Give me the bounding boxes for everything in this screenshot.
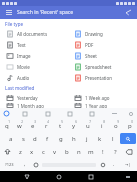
staticText: PDF xyxy=(85,42,94,48)
button[interactable]: 5 xyxy=(53,119,67,132)
button[interactable]: 4 xyxy=(39,119,53,132)
button[interactable]: k xyxy=(93,132,106,145)
button[interactable]: Collapse xyxy=(124,8,133,17)
button[interactable]: Spreadsheet xyxy=(68,61,137,72)
button[interactable]: z xyxy=(15,145,26,158)
button[interactable]: c xyxy=(37,145,49,158)
button[interactable]: a xyxy=(5,132,17,145)
button[interactable]: More xyxy=(103,108,125,119)
staticText: 5 xyxy=(61,120,63,124)
button[interactable]: . xyxy=(108,158,119,171)
button[interactable]: h xyxy=(67,132,80,145)
button[interactable]: Movie xyxy=(0,61,68,72)
button[interactable]: Recents xyxy=(80,171,101,182)
staticText: m xyxy=(88,148,94,156)
button[interactable]: n xyxy=(73,145,85,158)
staticText: Text xyxy=(17,42,26,48)
button[interactable]: Back xyxy=(17,171,37,182)
button[interactable]: s xyxy=(17,132,29,145)
staticText: v xyxy=(53,148,57,156)
button[interactable]: Google xyxy=(0,108,13,119)
button[interactable]: Sheet xyxy=(68,50,137,61)
button[interactable]: ?123 xyxy=(0,158,19,171)
button[interactable]: Drawing xyxy=(68,28,137,39)
button[interactable]: ? xyxy=(109,145,121,158)
button[interactable]: 1 xyxy=(0,119,13,132)
button[interactable]: Emoji xyxy=(30,158,41,171)
button[interactable]: Settings xyxy=(125,108,137,119)
button[interactable]: PDF xyxy=(68,39,137,50)
button[interactable]: 2 xyxy=(13,119,26,132)
staticText: Image xyxy=(17,53,31,59)
button[interactable]: 1 Month ago xyxy=(0,103,68,108)
button[interactable]: →| xyxy=(119,158,137,171)
button[interactable]: 8 xyxy=(95,119,109,132)
staticText: 6 xyxy=(75,120,77,124)
staticText: Yesterday xyxy=(17,95,38,101)
button[interactable]: Shift xyxy=(0,145,15,158)
button[interactable]: 7 xyxy=(81,119,95,132)
button[interactable]: Presentation xyxy=(68,72,137,83)
staticText: Movie xyxy=(17,64,30,70)
staticText: 7 xyxy=(89,120,91,124)
button[interactable]: Keyboard xyxy=(119,171,137,182)
button[interactable]: , xyxy=(19,158,30,171)
button[interactable]: ! xyxy=(97,145,109,158)
button[interactable]: b xyxy=(61,145,73,158)
button[interactable]: Audio xyxy=(0,72,68,83)
button[interactable]: Sticker xyxy=(59,108,81,119)
button[interactable]: GIF xyxy=(36,108,59,119)
button[interactable]: Translate xyxy=(81,108,103,119)
button[interactable]: v xyxy=(49,145,61,158)
button[interactable]: 6 xyxy=(67,119,81,132)
staticText: j xyxy=(86,135,88,143)
button[interactable]: Backspace xyxy=(121,145,137,158)
button[interactable]: 3 xyxy=(26,119,39,132)
staticText: d xyxy=(33,135,37,143)
button[interactable]: Menu xyxy=(4,8,14,18)
staticText: ! xyxy=(102,148,104,156)
button[interactable]: Voice input xyxy=(97,158,108,171)
staticText: e xyxy=(31,122,35,130)
button[interactable]: d xyxy=(29,132,41,145)
button[interactable]: 9 xyxy=(109,119,123,132)
button[interactable]: Space xyxy=(42,159,96,170)
staticText: i xyxy=(101,122,103,130)
staticText: c xyxy=(42,148,45,156)
button[interactable]: j xyxy=(80,132,93,145)
button[interactable]: 1 Year ago xyxy=(68,103,137,108)
button[interactable]: f xyxy=(41,132,54,145)
button[interactable]: Yesterday xyxy=(0,92,68,103)
button[interactable]: x xyxy=(26,145,37,158)
button[interactable]: Text xyxy=(0,39,68,50)
staticText: l xyxy=(112,135,114,143)
staticText: 9 xyxy=(117,120,119,124)
button[interactable]: Home xyxy=(48,171,69,182)
button[interactable]: 0 xyxy=(123,119,137,132)
button[interactable]: Image xyxy=(0,50,68,61)
staticText: ? xyxy=(114,148,117,156)
staticText: h xyxy=(72,135,76,143)
button[interactable]: Search xyxy=(120,133,136,144)
staticText: . xyxy=(113,161,115,168)
staticText: 2 xyxy=(21,120,23,124)
staticText: u xyxy=(86,122,90,130)
staticText: g xyxy=(59,135,63,143)
button[interactable]: 1 Week ago xyxy=(68,92,137,103)
button[interactable]: l xyxy=(106,132,119,145)
staticText: →| xyxy=(125,162,131,167)
button[interactable]: g xyxy=(54,132,67,145)
staticText: ?123 xyxy=(5,162,14,167)
button[interactable]: Themes xyxy=(13,108,36,119)
button[interactable]: m xyxy=(85,145,97,158)
button[interactable]: All documents xyxy=(0,28,68,39)
staticText: , xyxy=(24,161,26,168)
staticText: p xyxy=(128,122,132,130)
staticText: Search in 'Recent' space xyxy=(17,9,124,16)
staticText: Audio xyxy=(17,75,30,81)
staticText: File type xyxy=(5,21,24,27)
staticText: n xyxy=(77,148,81,156)
staticText: 1 Year ago xyxy=(85,103,108,108)
staticText: Drawing xyxy=(85,31,103,37)
staticText: 1 xyxy=(8,120,10,124)
